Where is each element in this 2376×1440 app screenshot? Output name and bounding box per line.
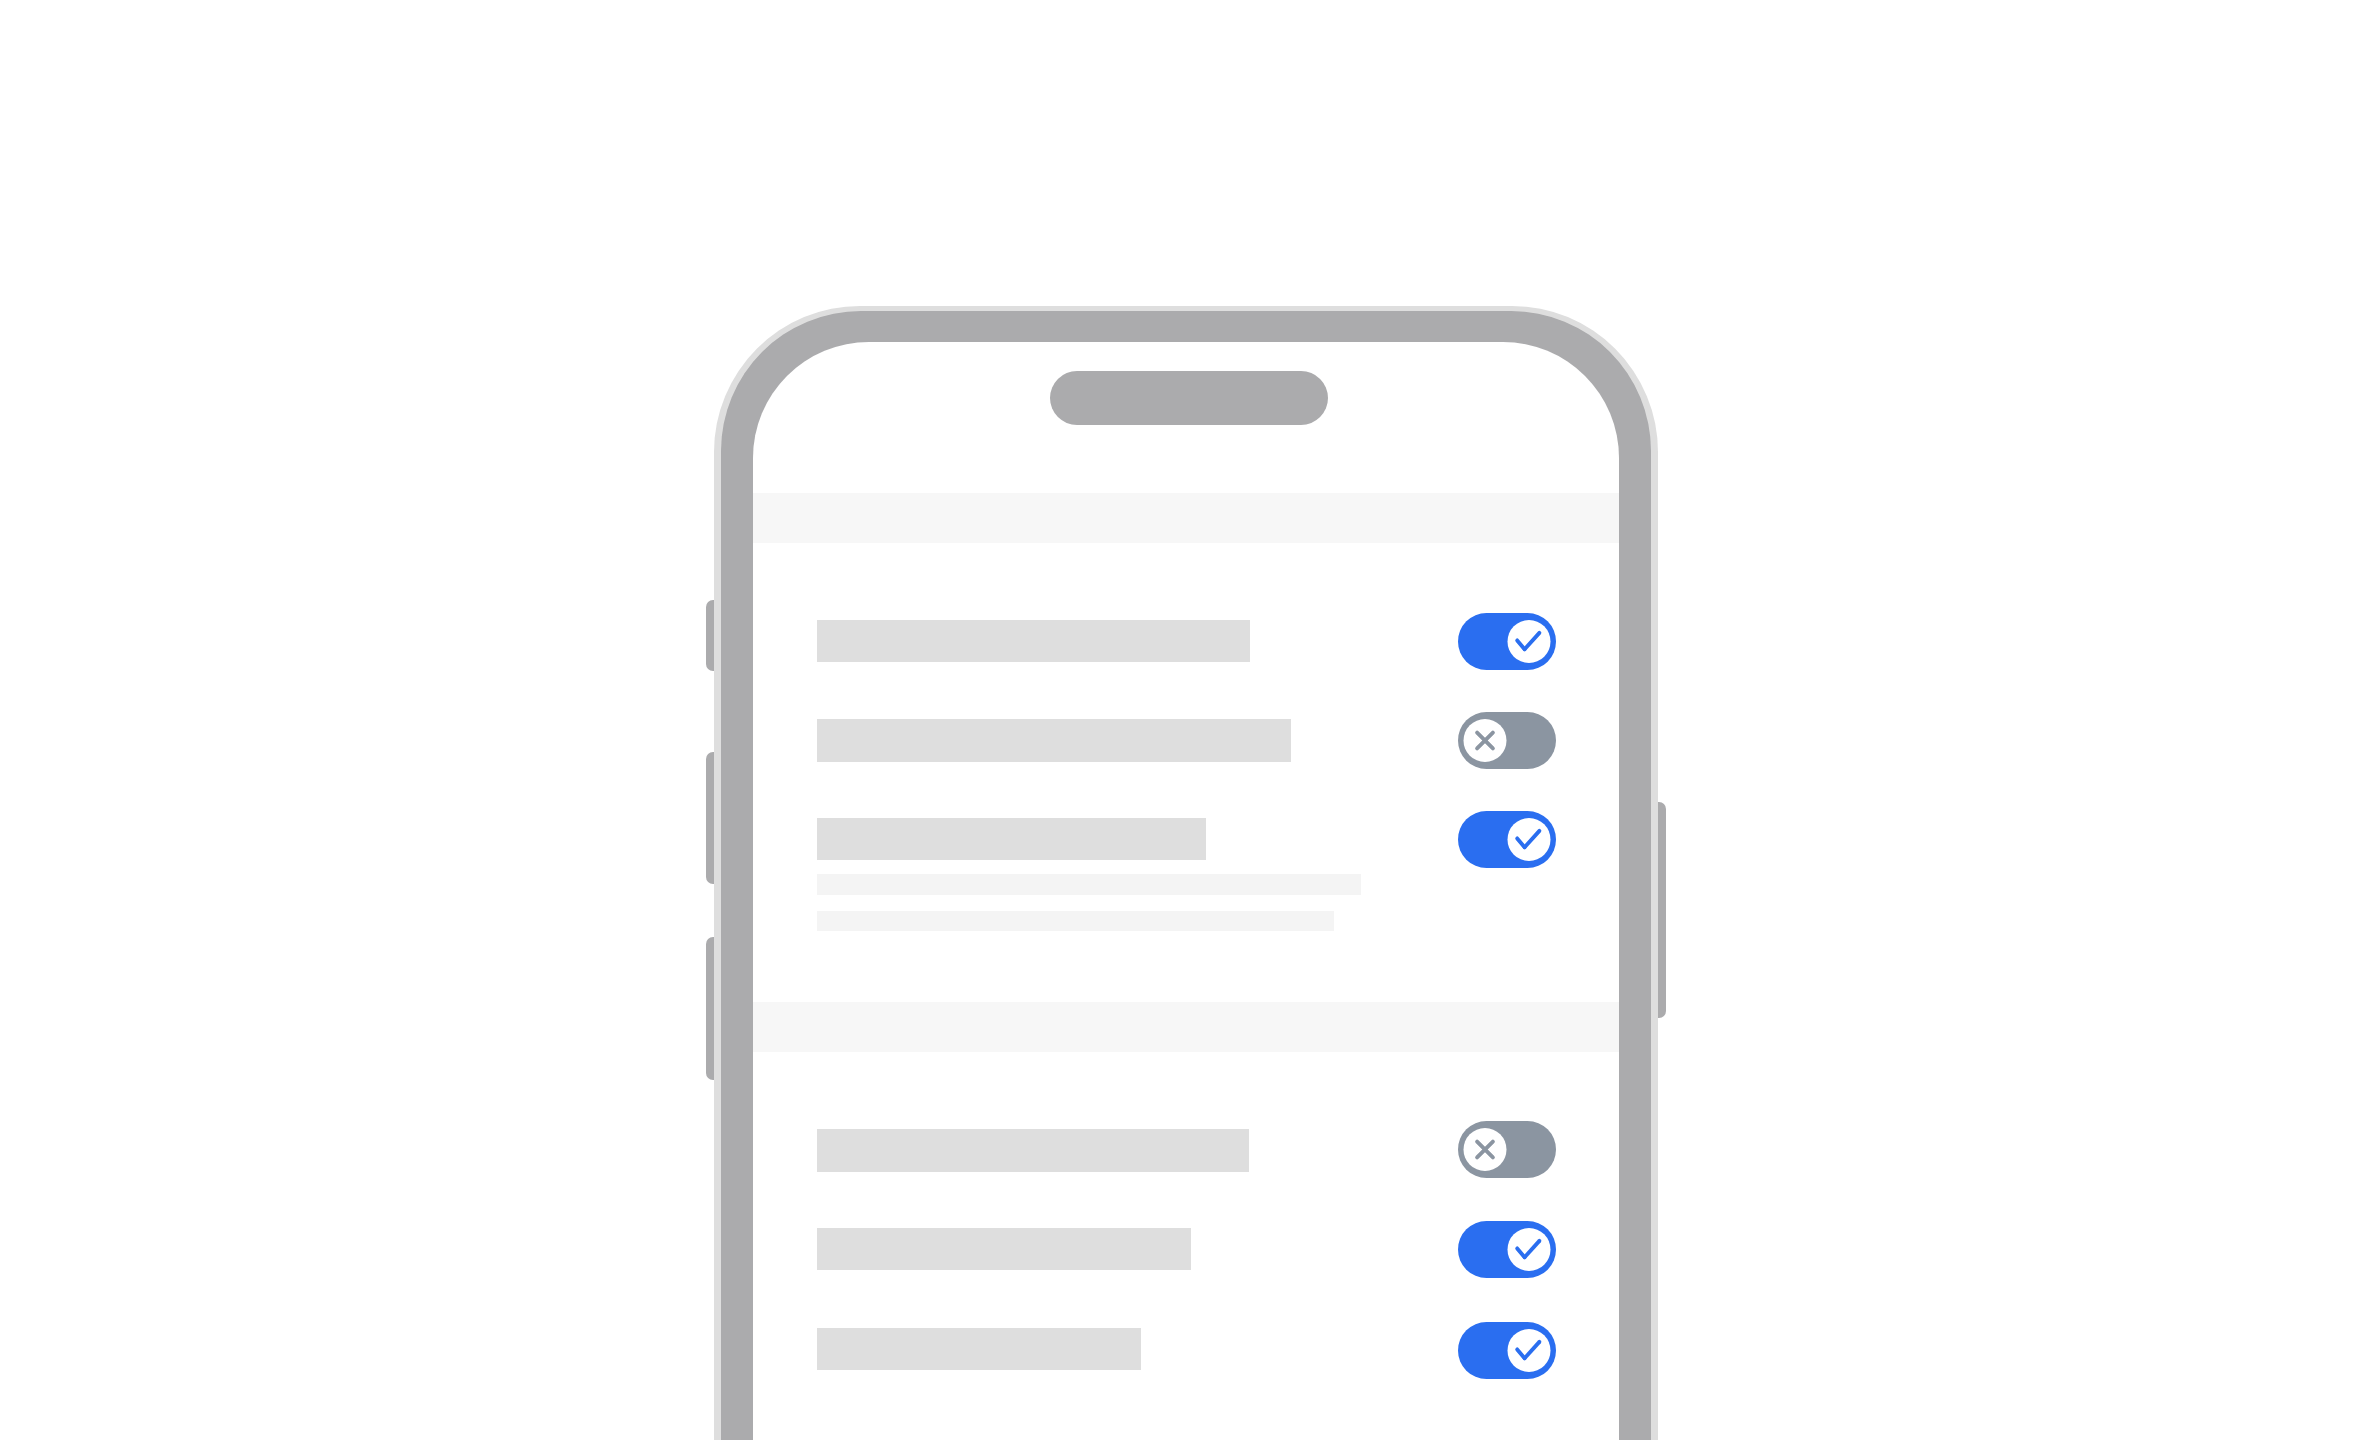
- button[interactable]: Volume down: [706, 937, 722, 1080]
- button[interactable]: Setting off: [1458, 712, 1556, 769]
- button[interactable]: Setting on: [753, 1198, 1619, 1297]
- button[interactable]: Setting off: [753, 1052, 1619, 1198]
- button[interactable]: Setting off: [1458, 1121, 1556, 1178]
- button[interactable]: Power: [1650, 802, 1666, 1018]
- button[interactable]: Setting on: [753, 788, 1619, 1002]
- button[interactable]: Setting on: [753, 1297, 1619, 1440]
- button[interactable]: Ring / silent switch: [706, 600, 722, 671]
- button[interactable]: Setting on: [1458, 613, 1556, 670]
- button[interactable]: Volume up: [706, 752, 722, 884]
- button[interactable]: Setting on: [1458, 1221, 1556, 1278]
- button[interactable]: Setting off: [753, 689, 1619, 788]
- button[interactable]: Setting on: [753, 543, 1619, 689]
- button[interactable]: Setting on: [1458, 1322, 1556, 1379]
- button[interactable]: Setting on: [1458, 811, 1556, 868]
